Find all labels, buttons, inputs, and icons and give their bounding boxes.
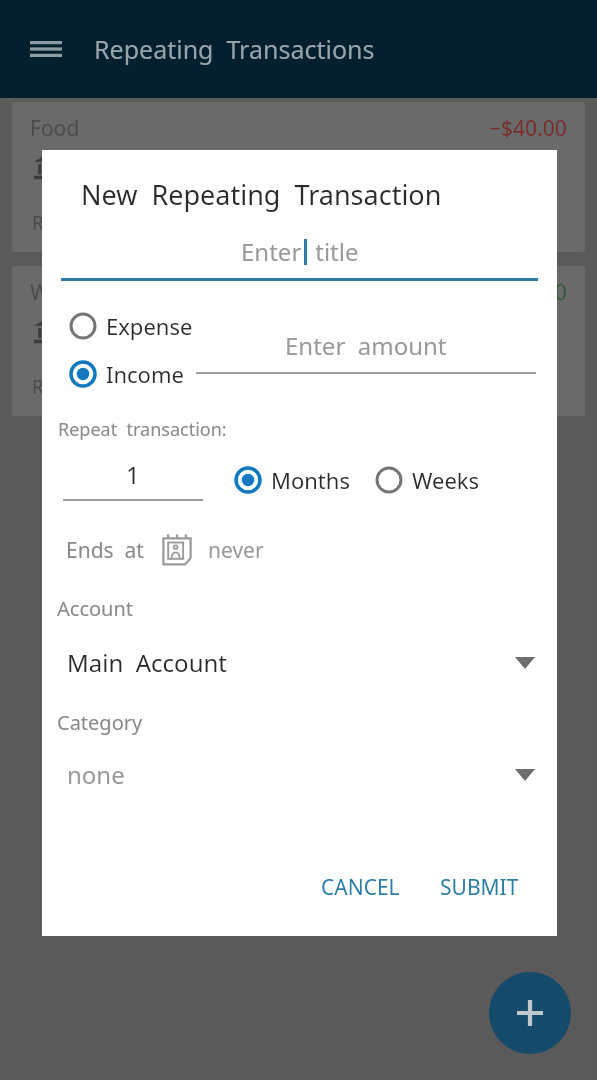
staticText: Re (32, 374, 55, 400)
button[interactable]: Enter (61, 235, 538, 281)
staticText: Expense (106, 311, 193, 341)
staticText: Ends at (66, 536, 144, 565)
button[interactable]: none (42, 758, 557, 791)
staticText: Account (57, 595, 134, 622)
staticText: Repeat transaction: (58, 417, 227, 442)
staticText: Re (32, 210, 55, 236)
staticText: Repeating Transactions (94, 32, 375, 66)
staticText: 1 (126, 458, 140, 491)
button[interactable]: Ends at (66, 533, 264, 567)
staticText: none (67, 758, 125, 791)
button[interactable]: CANCEL (311, 865, 410, 910)
button[interactable]: Income (64, 355, 188, 393)
staticText: Months (271, 465, 350, 495)
button[interactable]: SUBMIT (430, 865, 529, 910)
button[interactable]: Months (229, 461, 354, 499)
button[interactable]: Menu (22, 25, 70, 73)
staticText: SUBMIT (440, 873, 519, 902)
button[interactable]: Main Account (42, 646, 557, 679)
staticText: Food (30, 114, 80, 143)
button[interactable]: Food (12, 102, 585, 252)
button[interactable]: Weeks (370, 461, 484, 499)
button[interactable]: Expense (64, 307, 197, 345)
staticText: Category (57, 709, 143, 736)
staticText: −$40.00 (489, 114, 567, 143)
staticText: New Repeating Transaction (81, 176, 442, 213)
staticText: Weeks (412, 465, 480, 495)
staticText: CANCEL (321, 873, 400, 902)
staticText: never (208, 536, 264, 565)
button[interactable]: Enter amount (196, 329, 536, 374)
staticText: Enter (241, 235, 302, 268)
staticText: Enter amount (285, 329, 447, 362)
staticText: $0.00 (513, 278, 567, 307)
staticText: Income (106, 359, 184, 389)
staticText: title (309, 235, 359, 268)
staticText: W (30, 278, 50, 307)
button[interactable]: 1 (63, 458, 203, 501)
button[interactable]: Add (489, 972, 571, 1054)
staticText: Main Account (67, 646, 227, 679)
button[interactable]: W (12, 266, 585, 416)
